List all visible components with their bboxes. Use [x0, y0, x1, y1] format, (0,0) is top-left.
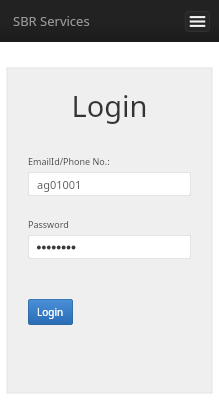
- staticText: SBR Services: [13, 12, 90, 30]
- staticText: Login: [7, 86, 212, 125]
- button[interactable]: ag01001: [28, 172, 191, 196]
- staticText: ag01001: [37, 177, 82, 192]
- button[interactable]: SBR Services: [13, 8, 90, 34]
- staticText: Login: [37, 305, 64, 319]
- staticText: EmailId/Phone No.:: [28, 155, 110, 167]
- button[interactable]: Toggle navigation menu: [185, 11, 210, 32]
- staticText: Password: [28, 218, 69, 230]
- button[interactable]: Login: [28, 299, 73, 325]
- button[interactable]: [28, 235, 191, 259]
